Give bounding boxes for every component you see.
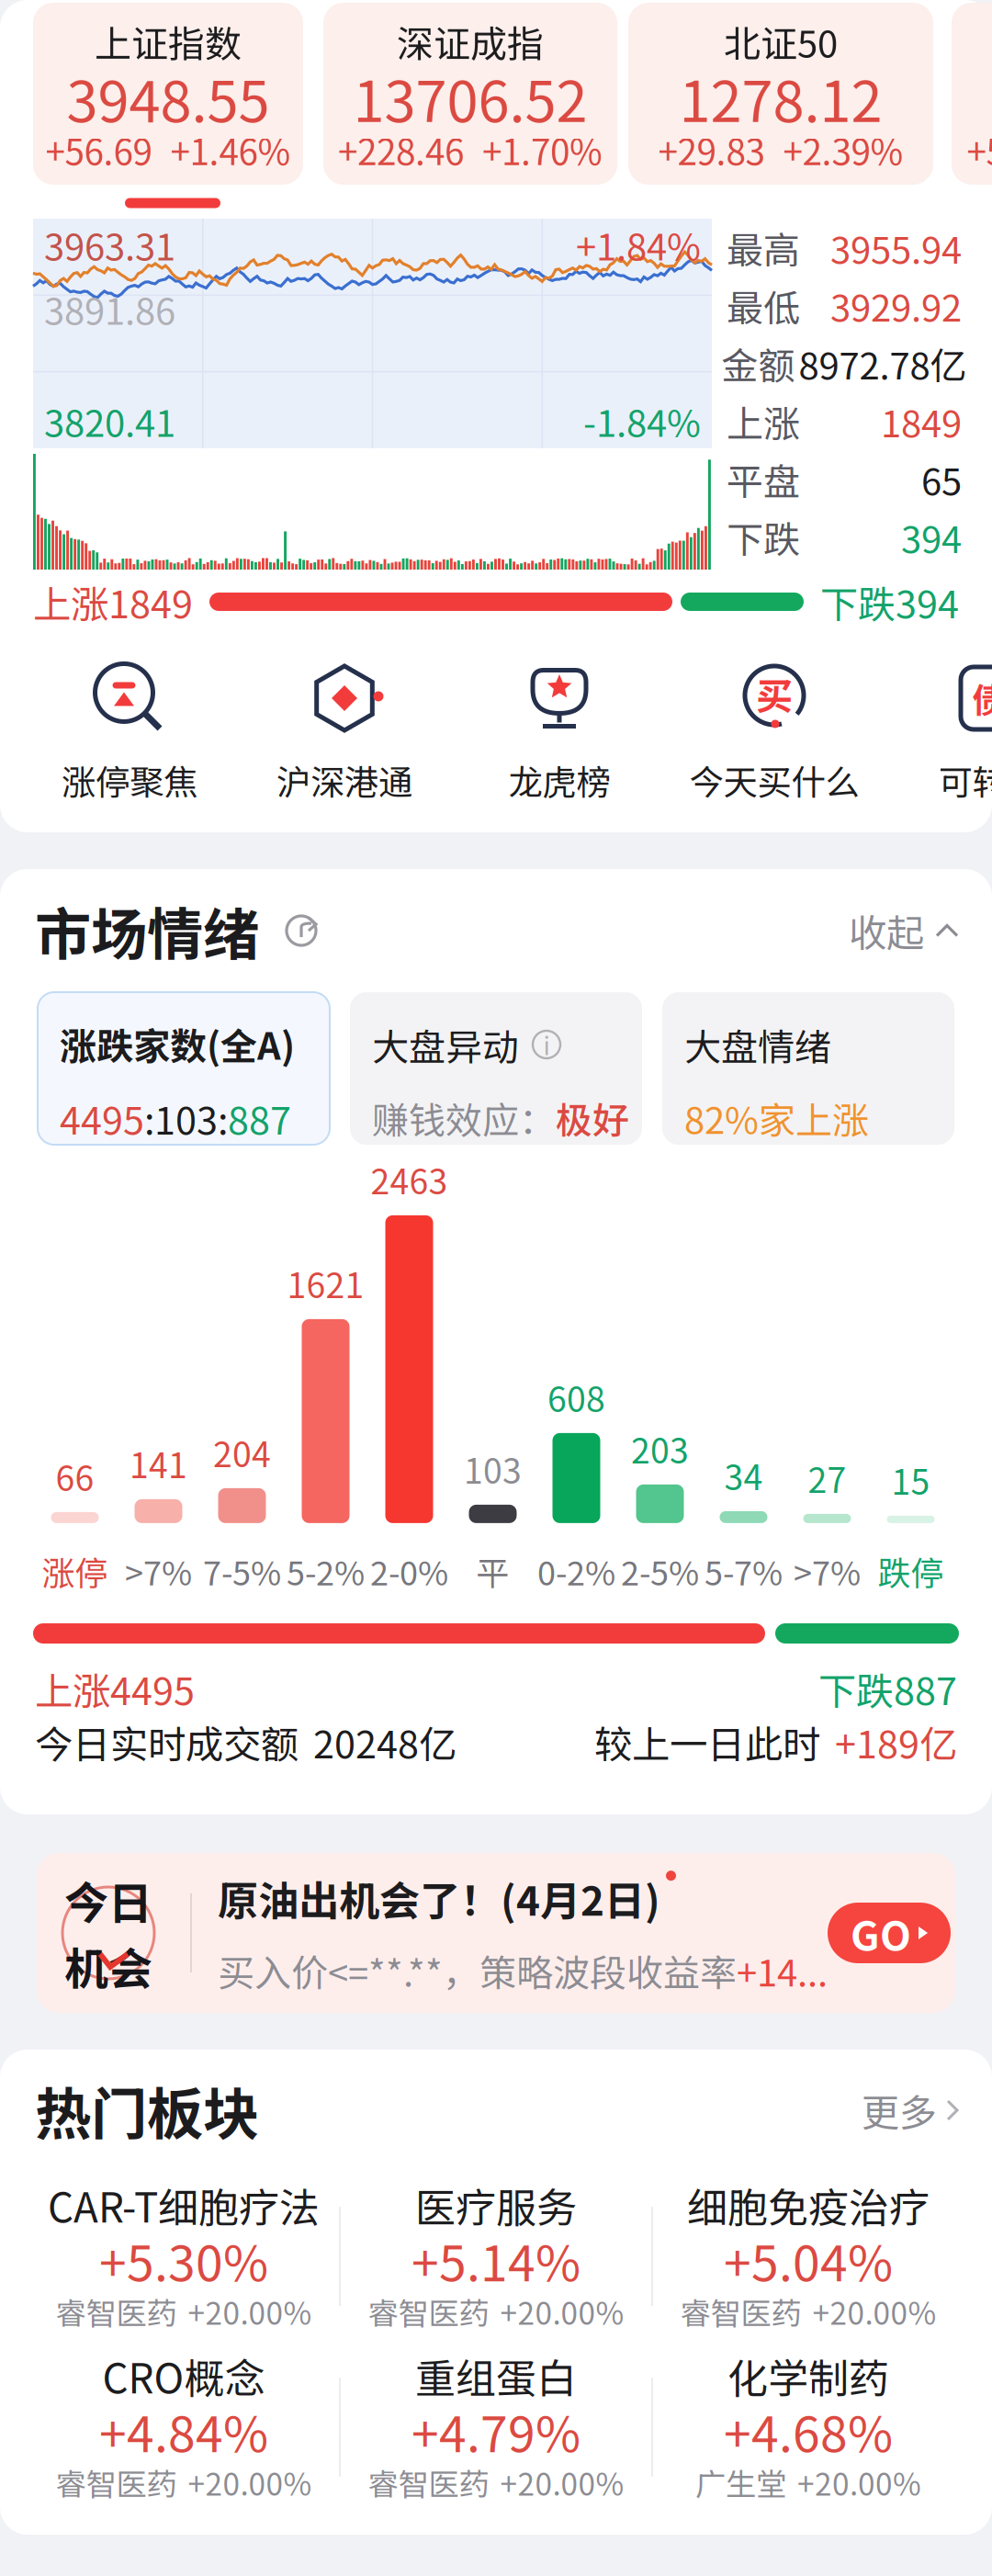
staticText: 1849 xyxy=(881,395,962,448)
staticText: +20.00% xyxy=(797,2460,921,2505)
button[interactable]: 收起 xyxy=(849,903,957,958)
staticText: 0-2% xyxy=(537,1547,615,1595)
button[interactable]: 今日 xyxy=(37,1853,955,2013)
staticText: 2-0% xyxy=(370,1547,448,1595)
button[interactable]: 科创50 xyxy=(952,3,992,185)
staticText: CAR-T细胞疗法 xyxy=(48,2176,320,2234)
staticText: 3891.86 xyxy=(44,282,175,335)
staticText: 1621 xyxy=(287,1258,364,1308)
staticText: 203 xyxy=(631,1424,689,1473)
staticText: 睿智医药 xyxy=(56,2289,177,2334)
staticText: 债 xyxy=(972,673,992,723)
staticText: 涨停 xyxy=(42,1547,108,1595)
staticText: +189亿 xyxy=(835,1714,957,1769)
staticText: 7-5% xyxy=(203,1547,281,1595)
staticText: 上涨4495 xyxy=(35,1661,195,1716)
staticText: 买 xyxy=(756,667,793,720)
staticText: 更多 xyxy=(862,2083,937,2138)
staticText: 热门板块 xyxy=(35,2069,259,2151)
staticText: +1.84% xyxy=(576,218,701,271)
staticText: 下跌 xyxy=(727,510,800,564)
staticText: 27 xyxy=(808,1453,846,1503)
button[interactable]: 债 xyxy=(882,660,992,805)
staticText: 65 xyxy=(921,452,962,506)
staticText: 可转债 xyxy=(938,755,992,805)
button[interactable]: 上证指数 xyxy=(33,3,303,185)
staticText: +20.00% xyxy=(188,2460,312,2505)
staticText: +5.14% xyxy=(411,2225,581,2295)
staticText: 睿智医药 xyxy=(368,2289,489,2334)
button[interactable]: 细胞免疫治疗 xyxy=(653,2179,964,2333)
staticText: 医疗服务 xyxy=(415,2176,577,2234)
staticText: 重组蛋白 xyxy=(415,2346,577,2405)
staticText: 82%家上涨 xyxy=(684,1091,869,1145)
button[interactable]: 医疗服务 xyxy=(341,2179,651,2333)
staticText: +2.39% xyxy=(783,124,903,175)
staticText: 5-7% xyxy=(705,1547,783,1595)
staticText: +20.00% xyxy=(500,2289,624,2334)
staticText: 细胞免疫治疗 xyxy=(687,2176,930,2234)
staticText: +5.30% xyxy=(99,2225,268,2295)
staticText: +14... xyxy=(737,1944,828,1997)
staticText: 极好 xyxy=(556,1091,629,1145)
staticText: 最低 xyxy=(727,279,800,332)
staticText: 66 xyxy=(56,1451,94,1501)
button[interactable]: 龙虎榜 xyxy=(452,660,667,805)
staticText: 龙虎榜 xyxy=(508,755,610,805)
staticText: 北证50 xyxy=(724,15,838,68)
button[interactable]: 涨停聚焦 xyxy=(22,660,237,805)
staticText: :103: xyxy=(144,1090,228,1146)
staticText: 103 xyxy=(464,1444,522,1494)
button[interactable]: 刷新 xyxy=(281,910,323,952)
staticText: +55.12 xyxy=(967,124,992,175)
staticText: 涨跌家数(全A) xyxy=(60,1017,295,1070)
button[interactable]: 重组蛋白 xyxy=(341,2350,651,2504)
staticText: 金额 xyxy=(721,337,795,390)
button[interactable]: CRO概念 xyxy=(28,2350,339,2504)
staticText: 887 xyxy=(228,1090,291,1146)
staticText: 1278.12 xyxy=(679,57,882,138)
button[interactable]: 涨跌家数(全A) xyxy=(38,992,330,1145)
staticText: +20.00% xyxy=(812,2289,936,2334)
staticText: 涨停聚焦 xyxy=(62,755,197,805)
staticText: 化学制药 xyxy=(727,2346,889,2405)
button[interactable]: 买 xyxy=(667,660,882,805)
staticText: 平盘 xyxy=(727,452,800,506)
staticText: 大盘异动 xyxy=(372,1018,519,1071)
button[interactable]: 北证50 xyxy=(628,3,933,185)
staticText: 买入价<=**.**，策略波段收益率 xyxy=(218,1944,737,1997)
staticText: +5.04% xyxy=(724,2225,893,2295)
button[interactable]: 深证成指 xyxy=(323,3,617,185)
staticText: 3948.55 xyxy=(67,57,270,138)
staticText: 3820.41 xyxy=(44,394,175,447)
staticText: 睿智医药 xyxy=(368,2460,489,2505)
staticText: 3963.31 xyxy=(44,218,175,271)
staticText: +4.84% xyxy=(99,2395,268,2466)
staticText: 市场情绪 xyxy=(35,890,259,971)
staticText: GO xyxy=(851,1904,911,1962)
staticText: 今日 xyxy=(64,1868,152,1932)
button[interactable]: 大盘情绪 xyxy=(662,992,954,1145)
staticText: i xyxy=(543,1027,550,1062)
button[interactable]: 更多 xyxy=(862,2083,957,2138)
staticText: +20.00% xyxy=(188,2289,312,2334)
staticText: +1.46% xyxy=(170,124,291,175)
staticText: 赚钱效应： xyxy=(372,1091,556,1145)
staticText: 收起 xyxy=(849,903,924,958)
staticText: +1.70% xyxy=(482,124,603,175)
button[interactable]: 化学制药 xyxy=(653,2350,964,2504)
staticText: 下跌394 xyxy=(820,574,959,629)
staticText: 下跌887 xyxy=(818,1661,957,1716)
button[interactable]: 沪深港通 xyxy=(237,660,452,805)
staticText: 较上一日此时 xyxy=(594,1714,820,1769)
button[interactable]: 大盘异动 xyxy=(350,992,642,1145)
staticText: 今天买什么 xyxy=(689,755,859,805)
staticText: 608 xyxy=(547,1372,605,1422)
staticText: 5-2% xyxy=(287,1547,365,1595)
staticText: +4.79% xyxy=(411,2395,581,2466)
button[interactable]: CAR-T细胞疗法 xyxy=(28,2179,339,2333)
staticText: >7% xyxy=(125,1547,192,1595)
staticText: 2-5% xyxy=(621,1547,699,1595)
staticText: >7% xyxy=(794,1547,861,1595)
staticText: 睿智医药 xyxy=(56,2460,177,2505)
